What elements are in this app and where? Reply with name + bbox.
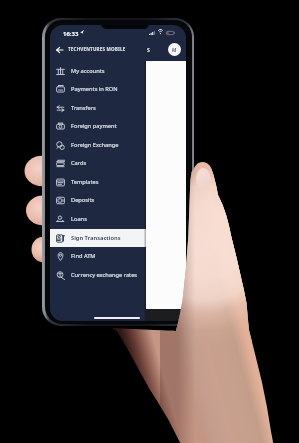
button[interactable]: TECHVENTURES MOBILE — [68, 46, 126, 52]
button[interactable]: Loans — [50, 210, 146, 228]
button[interactable]: Back — [52, 43, 66, 57]
button[interactable]: Foreign payment — [50, 117, 146, 135]
staticText: Sign Transactions — [71, 234, 121, 242]
staticText: Deposits — [71, 196, 95, 204]
staticText: Foreign Exchange — [71, 141, 119, 149]
staticText: My accounts — [71, 67, 105, 75]
button[interactable]: My accounts — [50, 62, 146, 80]
staticText: Cards — [71, 159, 87, 167]
staticText: Transfers — [71, 104, 96, 112]
staticText: Templates — [71, 178, 99, 186]
button[interactable]: Cards — [50, 154, 146, 172]
button[interactable]: Currency exchange rates — [50, 266, 146, 284]
staticText: 16:33 — [63, 30, 79, 38]
staticText: Loans — [71, 215, 87, 223]
button[interactable]: Find ATM — [50, 247, 146, 265]
button[interactable]: Templates — [50, 173, 146, 191]
staticText: M — [172, 47, 177, 53]
button[interactable]: Payments in RON — [50, 80, 146, 98]
staticText: Payments in RON — [71, 85, 118, 93]
staticText: Find ATM — [71, 252, 96, 260]
staticText: S — [147, 46, 150, 53]
button[interactable]: Profile — [168, 43, 181, 56]
button[interactable]: Transfers — [50, 99, 146, 117]
staticText: Currency exchange rates — [71, 271, 138, 279]
button[interactable]: Deposits — [50, 191, 146, 209]
staticText: Foreign payment — [71, 122, 117, 130]
button[interactable]: Sign Transactions — [50, 229, 146, 247]
button[interactable]: Foreign Exchange — [50, 136, 146, 154]
